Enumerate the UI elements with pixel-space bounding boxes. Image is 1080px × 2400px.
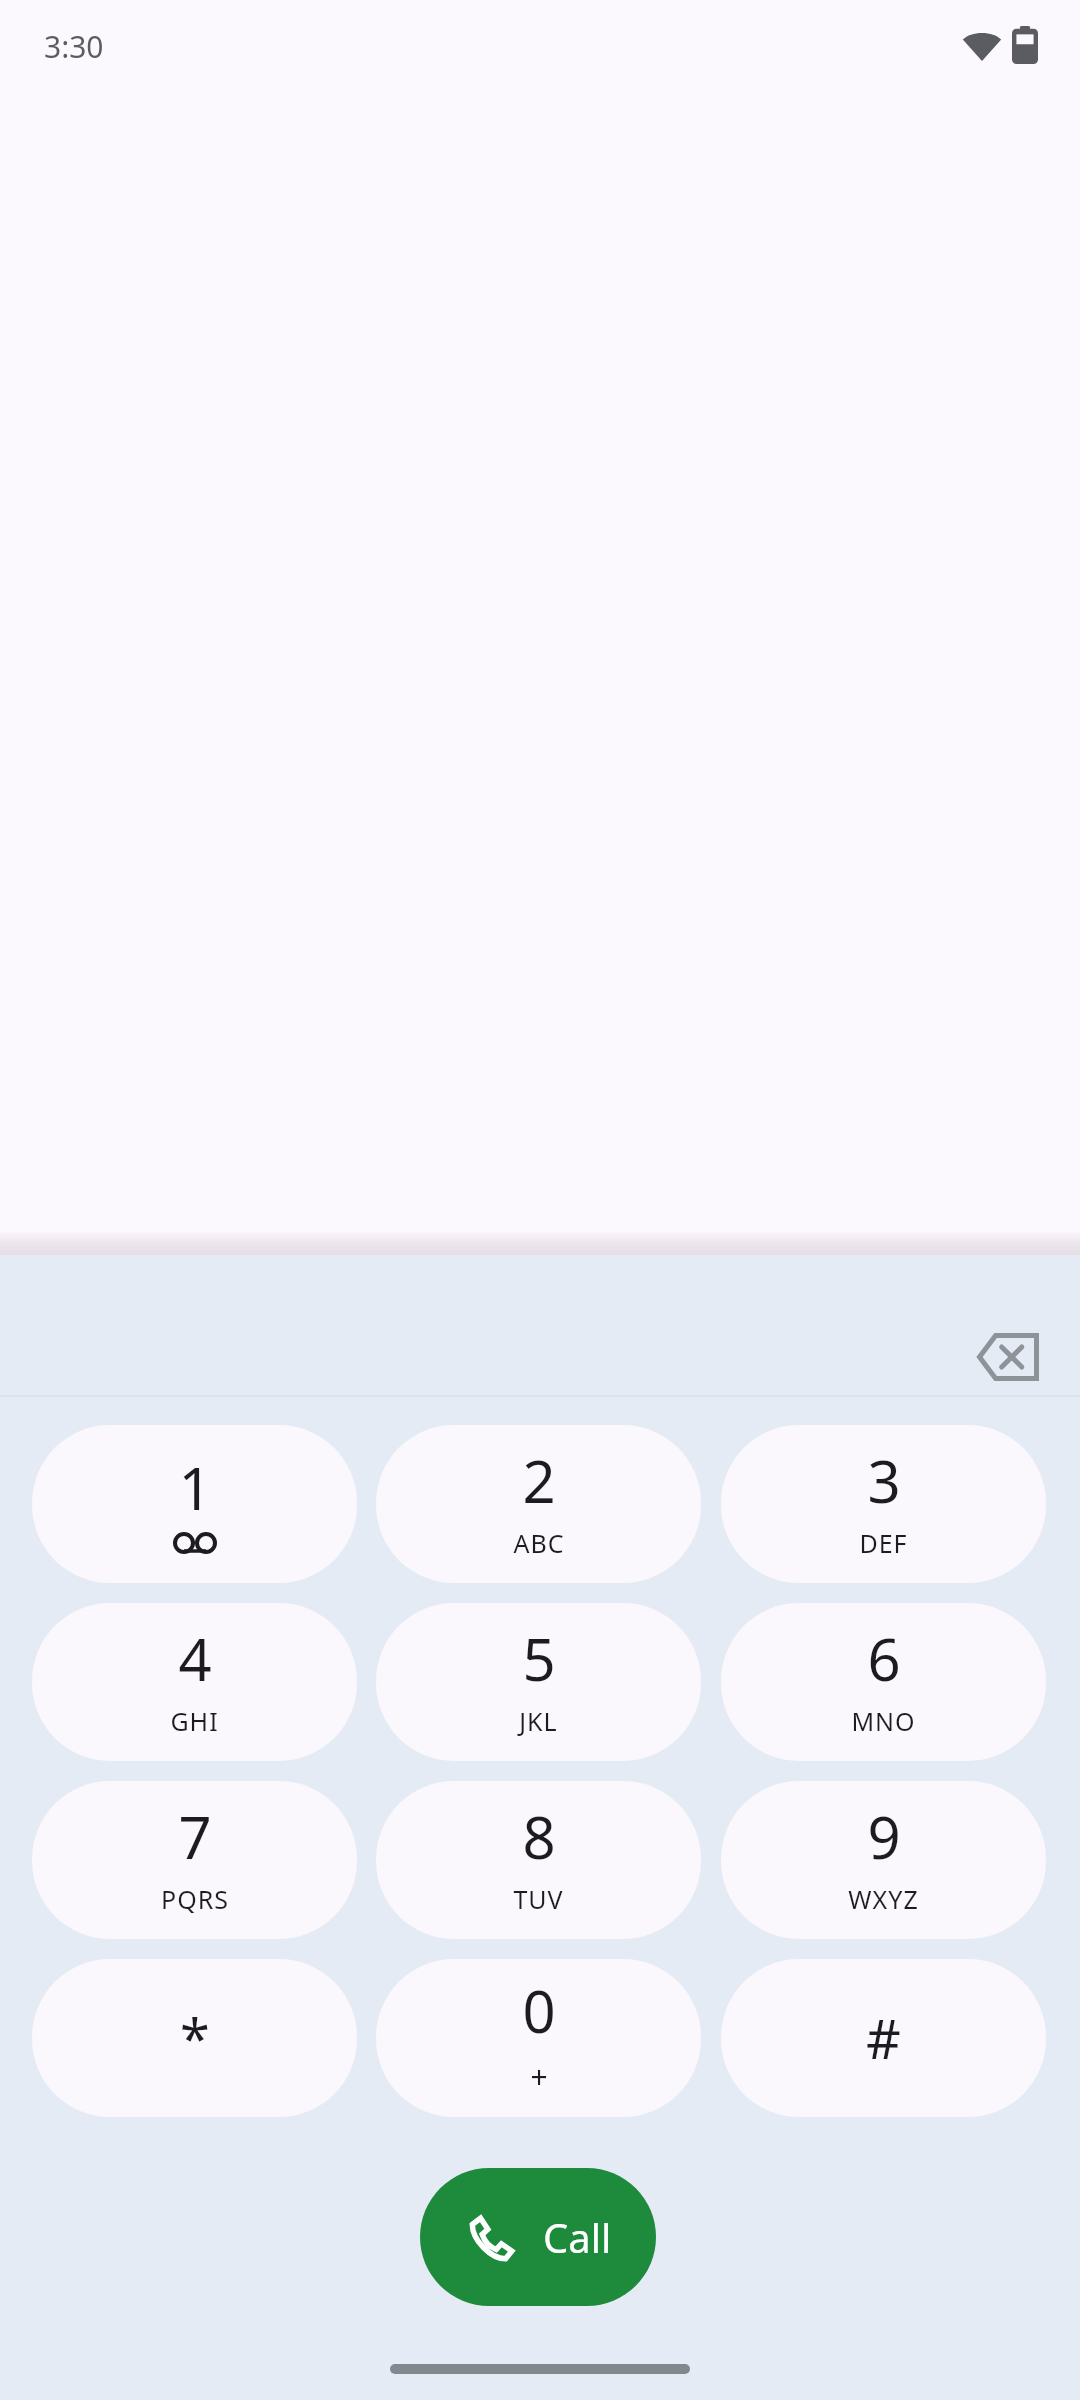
button[interactable]: Backspace <box>936 1297 1080 1417</box>
staticText: ABC <box>513 1526 565 1560</box>
button[interactable]: 2 <box>376 1425 701 1583</box>
button[interactable]: 9 <box>721 1781 1046 1939</box>
staticText: Call <box>543 2210 612 2264</box>
button[interactable]: # <box>721 1959 1046 2117</box>
staticText: 5 <box>522 1619 556 1698</box>
staticText: JKL <box>519 1704 558 1738</box>
staticText: 4 <box>178 1619 212 1698</box>
staticText: * <box>180 2001 210 2075</box>
staticText: 2 <box>522 1441 556 1520</box>
button[interactable]: 4 <box>32 1603 357 1761</box>
button[interactable]: 3 <box>721 1425 1046 1583</box>
staticText: TUV <box>513 1882 564 1916</box>
button[interactable]: 1 <box>32 1425 357 1583</box>
staticText: GHI <box>170 1704 219 1738</box>
staticText: 7 <box>178 1797 212 1876</box>
staticText: 9 <box>867 1797 901 1876</box>
button[interactable]: * <box>32 1959 357 2117</box>
staticText: # <box>866 2001 901 2075</box>
button[interactable]: 0 <box>376 1959 701 2117</box>
staticText: PQRS <box>161 1882 229 1916</box>
staticText: 1 <box>178 1448 212 1527</box>
staticText: MNO <box>851 1704 916 1738</box>
button[interactable]: 5 <box>376 1603 701 1761</box>
staticText: 3 <box>867 1441 901 1520</box>
button[interactable]: 8 <box>376 1781 701 1939</box>
staticText: 3:30 <box>44 26 104 67</box>
staticText: 0 <box>522 1971 556 2050</box>
button[interactable]: Call <box>420 2168 656 2306</box>
button[interactable]: 7 <box>32 1781 357 1939</box>
staticText: 8 <box>522 1797 556 1876</box>
staticText: WXYZ <box>848 1882 919 1916</box>
staticText: + <box>530 2056 549 2097</box>
button[interactable]: 6 <box>721 1603 1046 1761</box>
staticText: DEF <box>859 1526 908 1560</box>
staticText: 6 <box>867 1619 901 1698</box>
